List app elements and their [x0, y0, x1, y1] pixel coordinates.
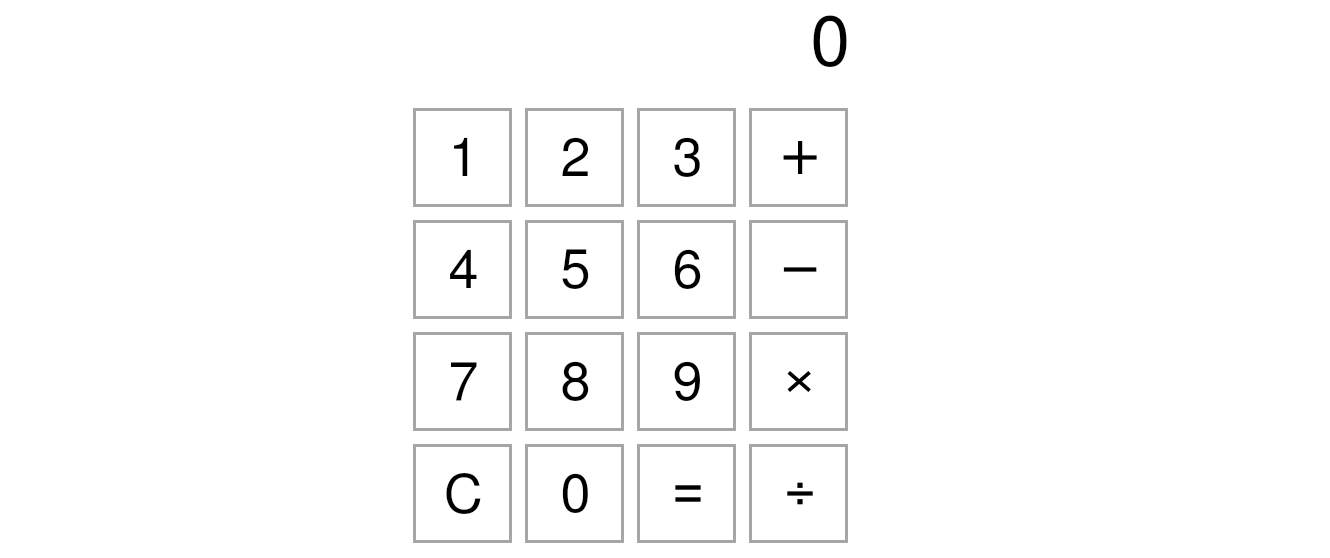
- other: Display: [413, 0, 848, 108]
- staticText: 6: [672, 245, 703, 299]
- staticText: C: [444, 469, 483, 523]
- staticText: 0: [560, 469, 591, 523]
- button[interactable]: 2: [525, 108, 624, 207]
- button[interactable]: 0: [525, 444, 624, 543]
- button[interactable]: Equals: [637, 444, 736, 543]
- button[interactable]: Plus: [749, 108, 848, 207]
- button[interactable]: 4: [413, 220, 512, 319]
- staticText: 0: [810, 8, 850, 79]
- button[interactable]: 3: [637, 108, 736, 207]
- button[interactable]: 8: [525, 332, 624, 431]
- button[interactable]: 7: [413, 332, 512, 431]
- button[interactable]: Multiply: [749, 332, 848, 431]
- button[interactable]: 1: [413, 108, 512, 207]
- staticText: 8: [560, 357, 591, 411]
- staticText: 7: [448, 357, 479, 411]
- staticText: 4: [448, 245, 479, 299]
- staticText: 1: [448, 133, 479, 187]
- staticText: 3: [672, 133, 703, 187]
- button[interactable]: 5: [525, 220, 624, 319]
- button[interactable]: C: [413, 444, 512, 543]
- button[interactable]: 9: [637, 332, 736, 431]
- button[interactable]: Minus: [749, 220, 848, 319]
- staticText: 5: [560, 245, 591, 299]
- staticText: 2: [560, 133, 591, 187]
- button[interactable]: 6: [637, 220, 736, 319]
- button[interactable]: Divide: [749, 444, 848, 543]
- staticText: 9: [672, 357, 703, 411]
